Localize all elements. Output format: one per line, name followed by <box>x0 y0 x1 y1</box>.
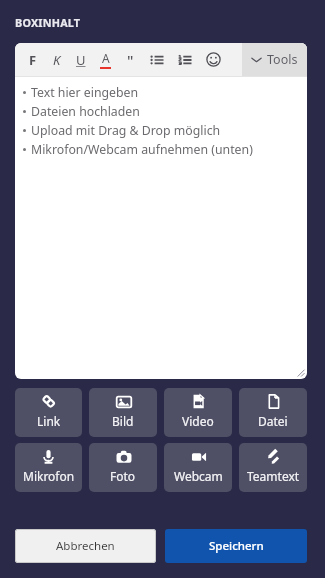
button[interactable]: Datei <box>239 388 307 437</box>
staticText: Speichern <box>209 538 264 554</box>
button[interactable]: Emoji <box>199 43 227 76</box>
staticText: BOXINHALT <box>15 15 81 30</box>
staticText: Teamtext <box>247 468 300 484</box>
button[interactable]: Quote <box>117 43 143 76</box>
button[interactable]: Speichern <box>165 529 307 563</box>
staticText: Mikrofon <box>23 468 75 484</box>
staticText: A <box>102 50 110 66</box>
button[interactable]: Video <box>164 388 232 437</box>
staticText: Upload mit Drag & Drop möglich <box>31 122 221 139</box>
button[interactable]: Numbered list <box>171 43 199 76</box>
button[interactable]: Text colour <box>93 43 117 76</box>
button[interactable]: Italic <box>45 43 69 76</box>
button[interactable]: Underline <box>69 43 93 76</box>
staticText: K <box>53 51 61 69</box>
staticText: Tools <box>267 51 298 68</box>
staticText: Video <box>182 413 214 429</box>
staticText: Link <box>37 413 61 429</box>
staticText: Text hier eingeben <box>31 84 139 101</box>
button[interactable]: Foto <box>89 443 157 492</box>
staticText: Foto <box>110 468 136 484</box>
staticText: Dateien hochladen <box>31 103 140 120</box>
staticText: Webcam <box>174 468 223 484</box>
staticText: F <box>29 51 37 69</box>
button[interactable]: Mikrofon <box>15 443 82 492</box>
button[interactable]: Abbrechen <box>15 529 156 563</box>
button[interactable]: Bulleted list <box>143 43 171 76</box>
button[interactable]: Link <box>15 388 82 437</box>
staticText: Bild <box>112 413 134 429</box>
button[interactable]: Teamtext <box>239 443 307 492</box>
button[interactable]: Tools <box>242 43 307 76</box>
staticText: Abbrechen <box>56 538 115 554</box>
staticText: U <box>76 51 86 69</box>
button[interactable]: Bild <box>89 388 157 437</box>
staticText: Datei <box>258 413 288 429</box>
staticText: Mikrofon/Webcam aufnehmen (unten) <box>31 141 253 158</box>
button[interactable]: Webcam <box>164 443 232 492</box>
staticText: " <box>127 50 134 70</box>
button[interactable]: Bold <box>21 43 45 76</box>
